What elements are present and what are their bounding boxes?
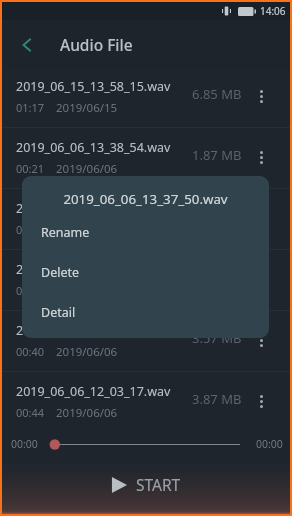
button[interactable]: More options [248, 389, 274, 413]
staticText: 2019/06/06 [56, 405, 118, 421]
staticText: 2019_06_06_13_37_50.wav [22, 190, 269, 208]
staticText: 2019_06_06_12_03_17.wav [16, 383, 171, 400]
staticText: 2019_06_06_13_37_50.wav [16, 200, 171, 217]
staticText: START [136, 474, 181, 495]
staticText: Audio File [60, 34, 133, 55]
staticText: 2019_06_06_13_38_54.wav [16, 139, 171, 156]
staticText: 2019/06/06 [56, 222, 118, 238]
staticText: 2019_06_15_13_58_15.wav [16, 78, 171, 95]
staticText: 01:17 [16, 100, 45, 115]
button[interactable]: More options [248, 84, 274, 108]
staticText: 3.87 MB [192, 390, 242, 408]
staticText: 00:00 [256, 437, 283, 451]
staticText: 2019/06/06 [56, 161, 118, 177]
button[interactable]: More options [248, 145, 274, 169]
button[interactable]: Rename [22, 212, 269, 252]
button[interactable]: More options [248, 267, 274, 291]
button[interactable]: 2019_06_06_13_20_11.wav [2, 250, 290, 311]
staticText: 3.57 MB [192, 329, 242, 347]
button[interactable]: More options [248, 206, 274, 230]
button[interactable]: Detail [22, 292, 269, 332]
staticText: 1.87 MB [192, 146, 242, 164]
button[interactable]: Delete [22, 252, 269, 292]
staticText: 6.85 MB [192, 85, 242, 103]
staticText: Delete [41, 264, 80, 281]
staticText: 2019/06/15 [56, 100, 118, 116]
button[interactable]: 2019_06_06_12_45_32.wav [2, 311, 290, 372]
button[interactable]: 2019_06_06_13_38_54.wav [2, 128, 290, 189]
staticText: 2019_06_06_13_20_11.wav [16, 261, 171, 278]
staticText: 00:21 [16, 161, 45, 176]
staticText: 00:40 [16, 344, 45, 359]
staticText: 00:00 [11, 437, 38, 451]
staticText: 2019/06/06 [56, 344, 118, 360]
staticText: Detail [41, 304, 76, 321]
staticText: 00:44 [16, 405, 45, 420]
button[interactable]: 2019_06_06_12_03_17.wav [2, 372, 290, 428]
staticText: 2019_06_06_12_45_32.wav [16, 322, 171, 339]
button[interactable]: Back [12, 30, 42, 60]
staticText: 01:02 [16, 283, 45, 298]
button[interactable]: 2019_06_06_13_37_50.wav [2, 189, 290, 250]
staticText: Rename [41, 224, 90, 241]
button[interactable]: START [2, 458, 290, 514]
button[interactable]: More options [248, 328, 274, 352]
staticText: 00:35 [16, 222, 45, 237]
staticText: 14:06 [260, 4, 286, 18]
button[interactable]: 2019_06_15_13_58_15.wav [2, 69, 290, 128]
